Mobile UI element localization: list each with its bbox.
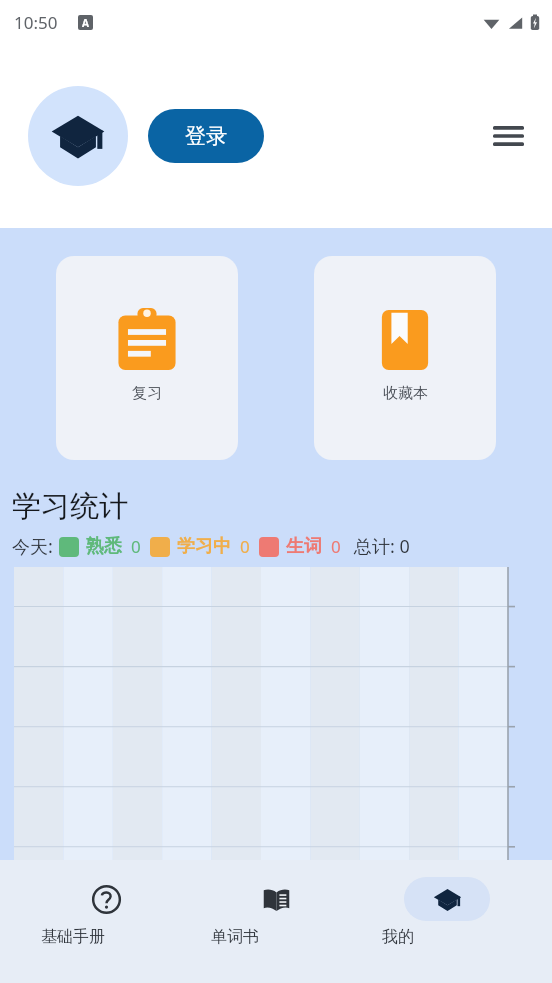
staticText: 学习中 [177, 535, 231, 558]
staticText: 我的 [382, 927, 512, 947]
staticText: 今天: [12, 534, 53, 559]
staticText: 熟悉 [86, 535, 122, 558]
button[interactable]: 收藏本 [314, 256, 496, 460]
staticText: 收藏本 [383, 384, 428, 403]
staticText: 0 [331, 535, 341, 558]
button[interactable]: 我的 [382, 873, 512, 947]
button[interactable]: 登录 [148, 109, 264, 163]
button[interactable]: 基础手册 [41, 873, 171, 947]
button[interactable] [28, 86, 128, 186]
staticText: 单词书 [211, 927, 341, 947]
staticText: 总计: 0 [354, 534, 410, 559]
staticText: 生词 [286, 535, 322, 558]
button[interactable]: Menu [486, 114, 530, 158]
staticText: 10:50 [14, 11, 58, 34]
staticText: 复习 [132, 384, 162, 403]
staticText: 登录 [185, 123, 227, 149]
staticText: 基础手册 [41, 927, 171, 947]
staticText: 0 [240, 535, 250, 558]
staticText: A [82, 16, 89, 30]
button[interactable]: 复习 [56, 256, 238, 460]
staticText: 0 [131, 535, 141, 558]
button[interactable]: 单词书 [211, 873, 341, 947]
staticText: 学习统计 [12, 488, 128, 525]
